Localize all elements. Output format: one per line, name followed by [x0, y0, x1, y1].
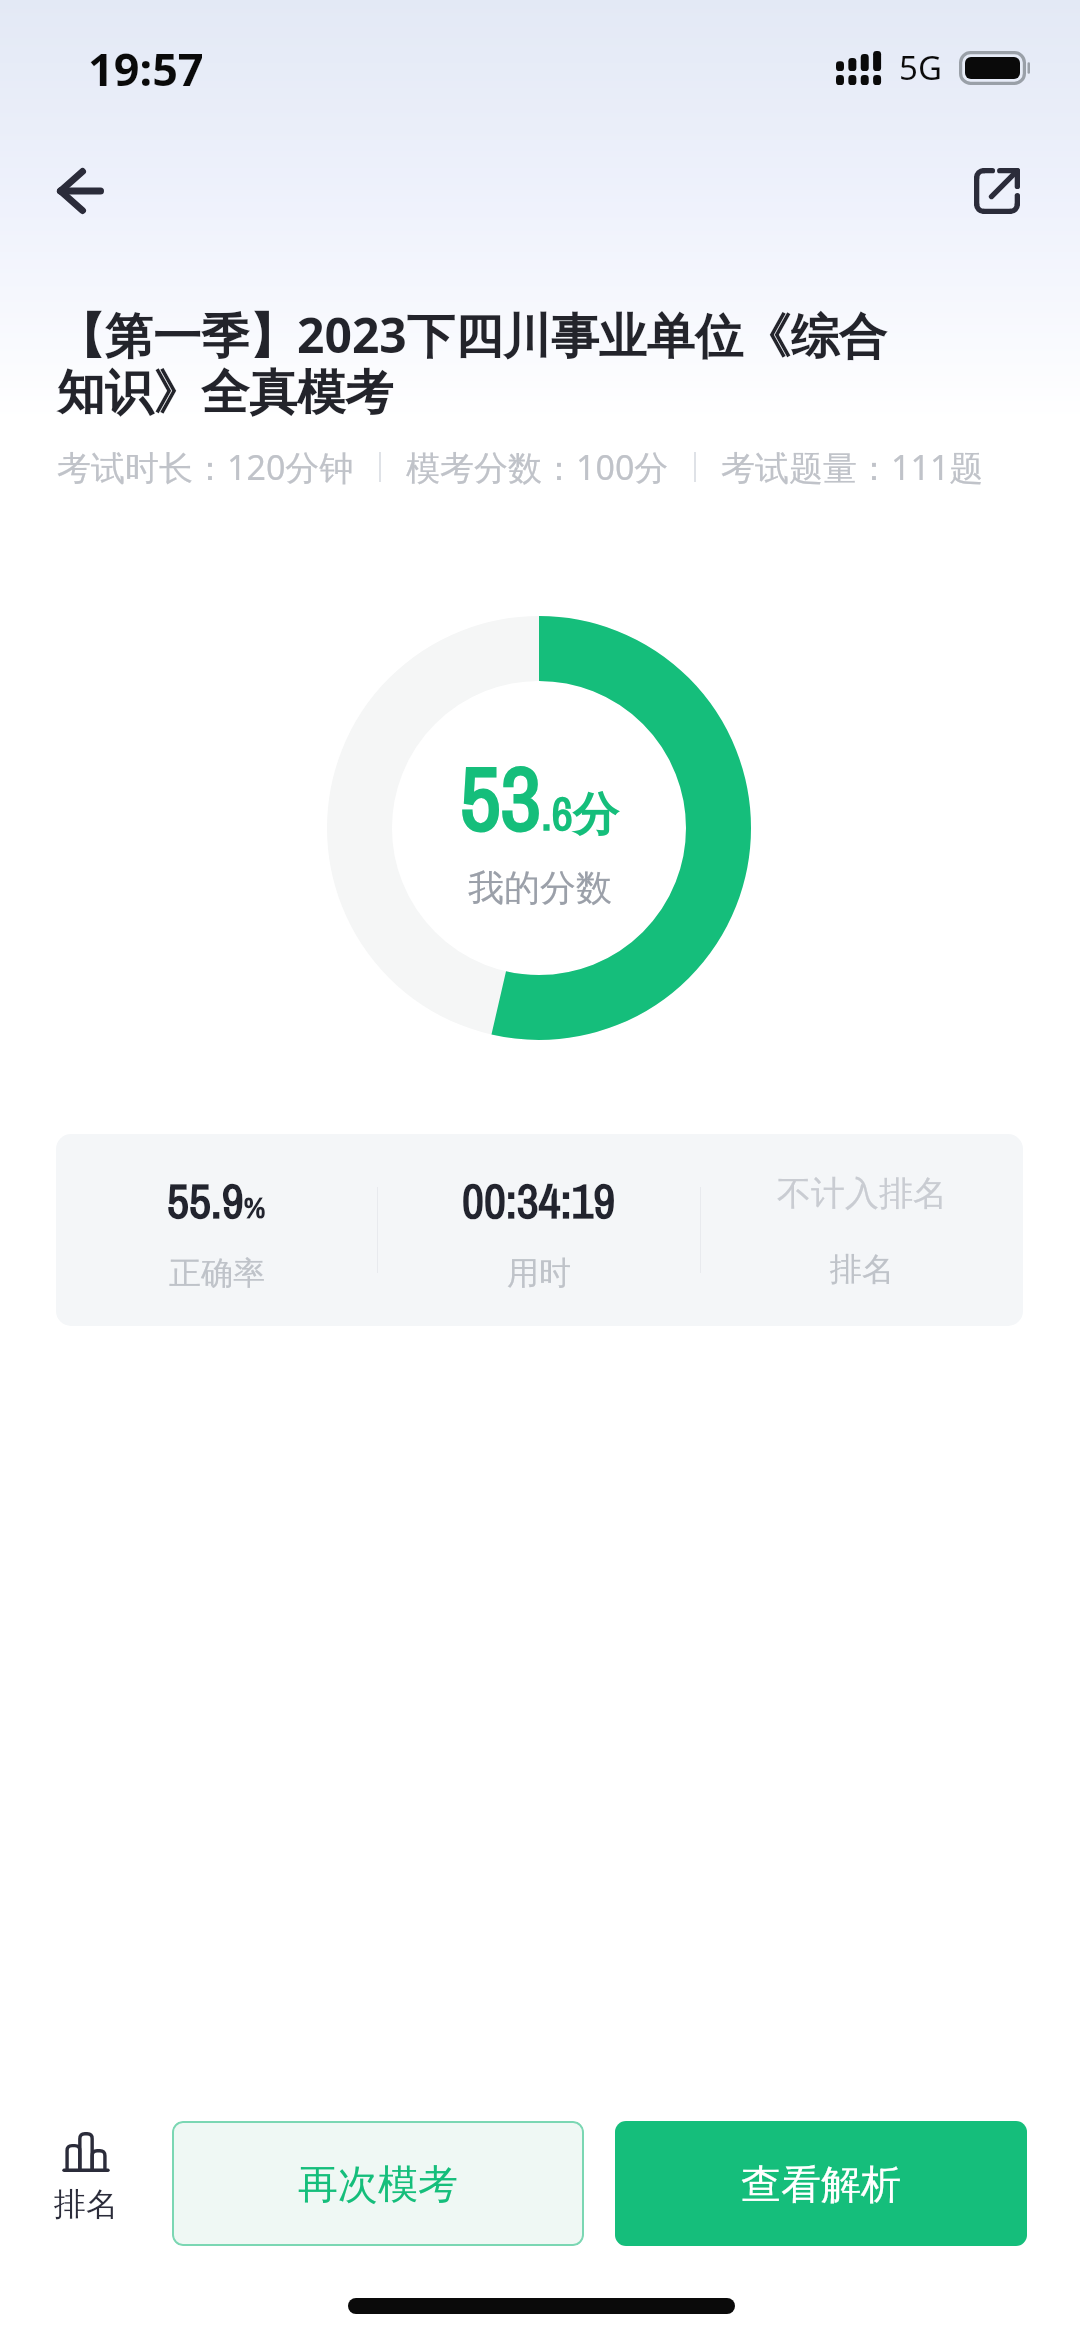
- staticText: 再次模考: [298, 2159, 458, 2209]
- staticText: 考试时长：120分钟: [57, 444, 354, 490]
- staticText: 我的分数: [468, 865, 612, 910]
- button[interactable]: 排名: [44, 2132, 128, 2224]
- staticText: 排名: [54, 2184, 118, 2224]
- staticText: 00:34:19: [462, 1168, 616, 1233]
- staticText: 模考分数：100分: [406, 444, 669, 490]
- staticText: 不计入排名: [777, 1172, 947, 1215]
- staticText: 55.9%: [167, 1168, 266, 1233]
- button[interactable]: 查看解析: [615, 2121, 1027, 2246]
- staticText: 5G: [899, 45, 942, 90]
- staticText: 排名: [830, 1249, 894, 1289]
- staticText: 正确率: [169, 1253, 265, 1293]
- staticText: 53.6分: [460, 738, 619, 858]
- staticText: 考试题量：111题: [721, 444, 984, 490]
- button[interactable]: 再次模考: [172, 2121, 584, 2246]
- staticText: 【第一季】2023下四川事业单位《综合 知识》全真模考: [57, 302, 957, 423]
- staticText: 19:57: [88, 38, 204, 99]
- button[interactable]: Back: [32, 143, 128, 239]
- staticText: 用时: [507, 1253, 571, 1293]
- button[interactable]: Share: [949, 143, 1045, 239]
- staticText: 查看解析: [741, 2159, 901, 2209]
